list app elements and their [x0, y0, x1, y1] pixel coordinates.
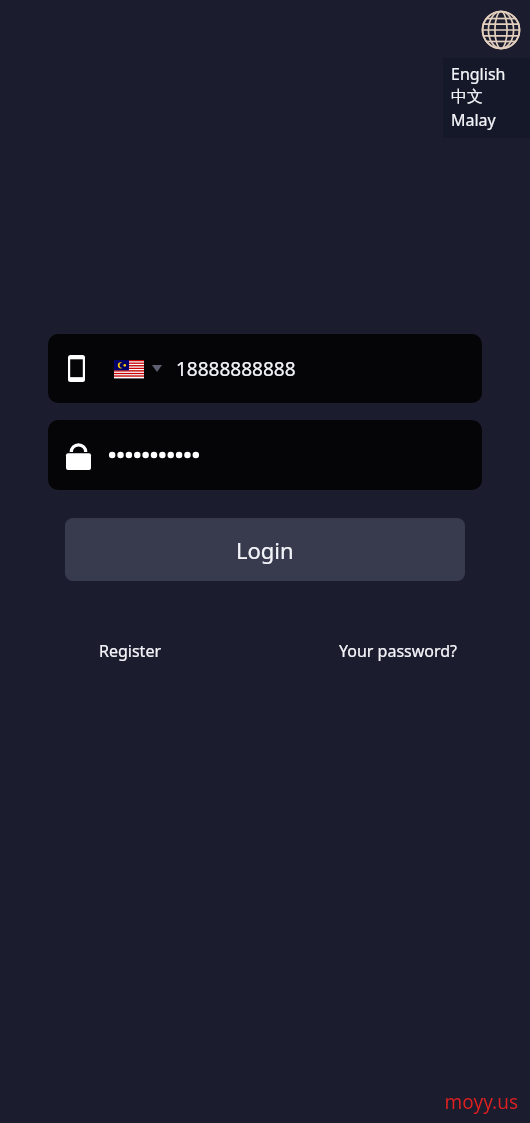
button[interactable]: Malay	[451, 108, 530, 132]
button[interactable]: Register	[97, 638, 164, 664]
button[interactable]: English	[451, 62, 530, 86]
button[interactable]: Language	[481, 10, 521, 50]
staticText: Malay	[451, 109, 496, 131]
staticText: moyy.us	[444, 1089, 518, 1115]
button[interactable]: 中文	[451, 86, 530, 108]
button[interactable]: 18888888888	[48, 334, 482, 403]
staticText: Login	[236, 535, 294, 565]
button[interactable]: Login	[65, 518, 465, 581]
staticText: Register	[99, 640, 162, 662]
staticText: 18888888888	[176, 356, 296, 382]
button[interactable]: Your password?	[337, 638, 460, 664]
button[interactable]	[48, 420, 482, 490]
staticText: 中文	[451, 87, 483, 107]
staticText: Your password?	[339, 640, 458, 662]
staticText: English	[451, 63, 506, 85]
